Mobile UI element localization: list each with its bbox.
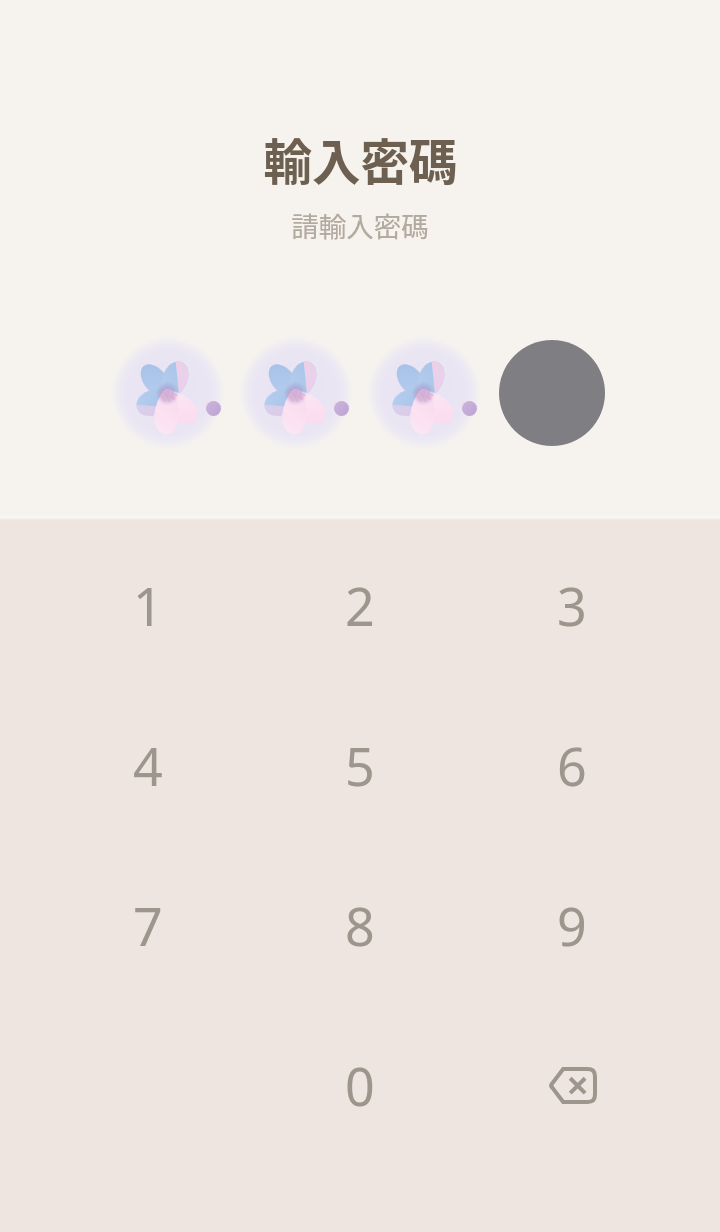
button[interactable]: 6 <box>466 695 678 836</box>
button[interactable]: 0 <box>254 1015 466 1156</box>
staticText: 2 <box>345 570 375 641</box>
staticText: 0 <box>345 1050 375 1121</box>
staticText: 3 <box>557 570 587 641</box>
staticText: 4 <box>133 730 163 801</box>
staticText: 輸入密碼 <box>263 124 458 194</box>
button[interactable]: 9 <box>466 855 678 996</box>
staticText: 7 <box>133 890 163 961</box>
button[interactable]: 8 <box>254 855 466 996</box>
button[interactable]: 2 <box>254 535 466 676</box>
staticText: 6 <box>557 730 587 801</box>
button[interactable]: 1 <box>42 535 254 676</box>
staticText: 1 <box>133 570 163 641</box>
button[interactable]: 5 <box>254 695 466 836</box>
staticText: 8 <box>345 890 375 961</box>
staticText: 9 <box>557 890 587 961</box>
button[interactable]: Delete <box>466 1015 678 1156</box>
button[interactable]: 3 <box>466 535 678 676</box>
staticText: 請輸入密碼 <box>291 205 429 245</box>
button[interactable]: 4 <box>42 695 254 836</box>
staticText: 5 <box>345 730 375 801</box>
button[interactable]: 7 <box>42 855 254 996</box>
